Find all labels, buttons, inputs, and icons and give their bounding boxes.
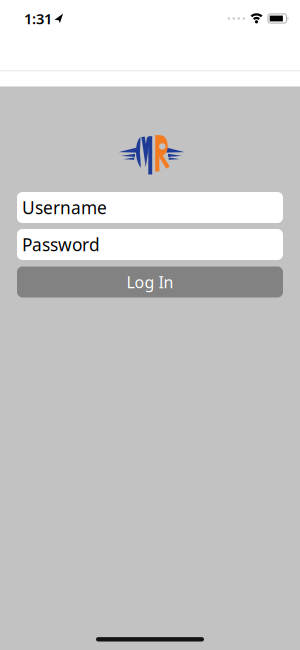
staticText: 1:31 [24, 9, 52, 28]
staticText: Log In [126, 271, 173, 293]
staticText: Password [22, 233, 100, 256]
button[interactable]: Username [17, 192, 283, 223]
staticText: Username [22, 196, 107, 219]
button[interactable]: Log In [17, 266, 283, 297]
button[interactable]: Password [17, 229, 283, 260]
